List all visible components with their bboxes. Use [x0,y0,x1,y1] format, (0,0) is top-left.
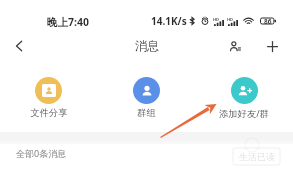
staticText: 添加好友/群 [219,107,269,120]
button[interactable]: 返回 [7,34,31,58]
staticText: 86 [264,17,272,25]
staticText: 晚上7:40 [47,15,89,29]
staticText: 全部0条消息 [16,147,67,159]
button[interactable]: 联系人 [224,35,246,57]
button[interactable]: 文件分享 [0,77,97,119]
staticText: 生活已读 [239,151,275,162]
button[interactable]: 添加 [261,35,283,57]
staticText: HD [227,17,233,22]
staticText: 群组 [137,107,156,119]
button[interactable]: 群组 [97,77,195,119]
staticText: 14.1K/s [151,14,187,28]
button[interactable]: 添加好友/群 [195,77,293,120]
staticText: 文件分享 [30,107,68,119]
staticText: 消息 [135,38,159,53]
staticText: HD [213,17,219,22]
